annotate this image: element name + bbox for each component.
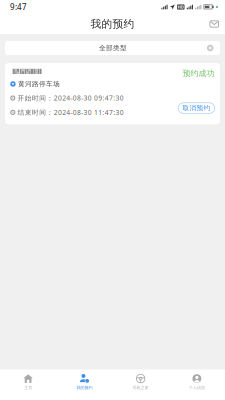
button[interactable]: 取消预约 xyxy=(178,103,215,113)
staticText: 主页 xyxy=(24,385,32,390)
staticText: 全部类型 xyxy=(99,44,127,52)
staticText: 我的预约 xyxy=(76,385,92,390)
button[interactable]: 我的预约 xyxy=(56,369,112,400)
staticText: 开始时间：2024-08-30 09:47:30 xyxy=(18,94,124,102)
staticText: 9:47 xyxy=(10,2,27,12)
staticText: HD xyxy=(178,4,184,10)
button[interactable]: 个人信息 xyxy=(169,369,225,400)
staticText: 司机之家 xyxy=(133,385,149,390)
staticText: 预约成功 xyxy=(183,68,215,78)
staticText: 黄河路停车场 xyxy=(18,80,60,88)
staticText: 个人信息 xyxy=(189,385,205,390)
button[interactable]: 司机之家 xyxy=(112,369,169,400)
staticText: 取消预约 xyxy=(182,104,210,112)
button[interactable]: 主页 xyxy=(0,369,56,400)
staticText: 结束时间：2024-08-30 11:47:30 xyxy=(18,108,124,117)
button[interactable]: 消息 xyxy=(203,16,225,31)
button[interactable]: 全部类型 xyxy=(5,41,220,55)
staticText: 我的预约 xyxy=(90,17,134,30)
